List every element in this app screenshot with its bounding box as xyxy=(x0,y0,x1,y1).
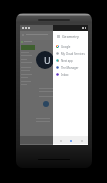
button[interactable]: Google xyxy=(53,43,88,50)
button[interactable]: Recents xyxy=(78,137,85,144)
button[interactable]: Home xyxy=(67,137,74,144)
staticText: Inbox xyxy=(61,73,69,77)
staticText: Google xyxy=(61,45,71,49)
button[interactable]: The Manager xyxy=(53,64,88,71)
button[interactable]: Menu xyxy=(53,31,88,41)
staticText: Geometry xyxy=(62,34,79,39)
button[interactable]: Nest app xyxy=(53,57,88,64)
other: Menu xyxy=(56,34,60,38)
staticText: U xyxy=(44,54,51,66)
button[interactable]: My Cloud Services for the a xyxy=(53,50,88,57)
button[interactable]: Inbox xyxy=(53,71,88,78)
button[interactable]: Back xyxy=(57,137,64,144)
staticText: My Cloud Services for the a xyxy=(61,52,88,56)
staticText: Nest app xyxy=(61,59,73,63)
staticText: The Manager xyxy=(61,66,79,70)
